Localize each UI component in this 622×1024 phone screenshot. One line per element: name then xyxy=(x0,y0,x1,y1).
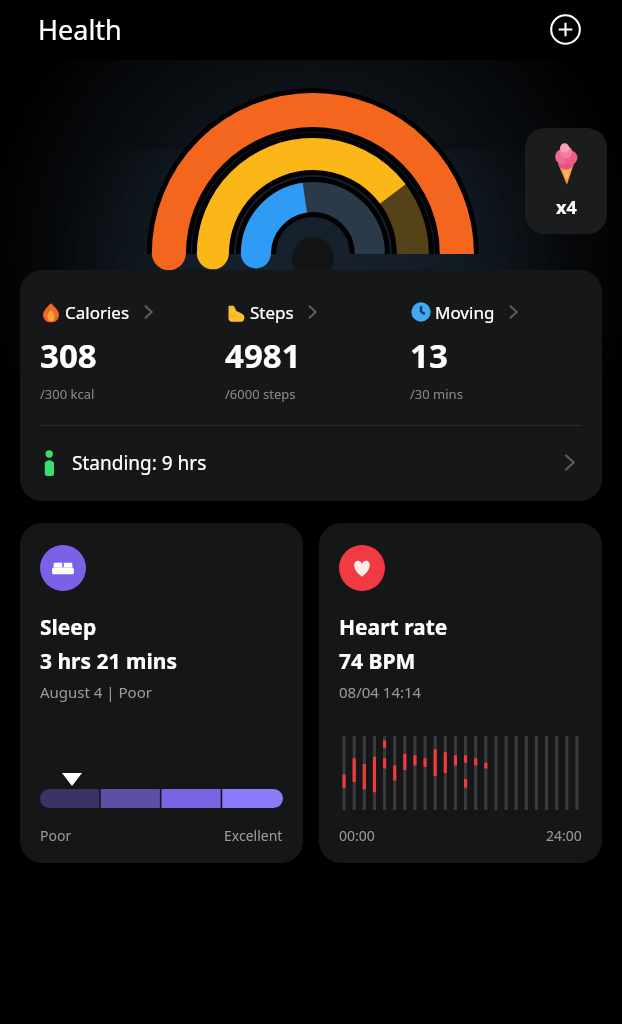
staticText: /6000 steps xyxy=(225,385,296,403)
staticText: 08/04 14:14 xyxy=(339,682,422,702)
staticText: 24:00 xyxy=(546,826,582,845)
staticText: Calories xyxy=(65,301,130,324)
staticText: 00:00 xyxy=(339,826,375,845)
staticText: 74 BPM xyxy=(339,647,416,676)
staticText: August 4 | Poor xyxy=(40,682,152,702)
staticText: x4 xyxy=(556,195,577,220)
staticText: Health xyxy=(38,11,122,48)
staticText: Excellent xyxy=(224,826,283,845)
button[interactable]: Moving xyxy=(410,300,588,403)
button[interactable]: Sleep xyxy=(20,523,303,863)
staticText: Sleep xyxy=(40,613,97,642)
staticText: 4981 xyxy=(225,333,301,378)
staticText: Steps xyxy=(250,301,294,324)
button[interactable]: Steps xyxy=(225,300,410,403)
staticText: Standing: 9 hrs xyxy=(72,450,207,476)
button[interactable]: Add xyxy=(548,12,582,46)
button[interactable]: Treats x4 xyxy=(525,128,607,234)
button[interactable]: Standing: 9 hrs xyxy=(20,426,602,501)
staticText: /300 kcal xyxy=(40,385,95,403)
staticText: Heart rate xyxy=(339,613,448,642)
button[interactable]: Heart rate xyxy=(319,523,602,863)
staticText: 3 hrs 21 mins xyxy=(40,647,177,676)
staticText: Moving xyxy=(435,301,495,324)
staticText: Poor xyxy=(40,826,72,845)
staticText: /30 mins xyxy=(410,385,463,403)
button[interactable]: Calories xyxy=(40,300,225,403)
staticText: 13 xyxy=(410,333,448,378)
staticText: 308 xyxy=(40,333,97,378)
